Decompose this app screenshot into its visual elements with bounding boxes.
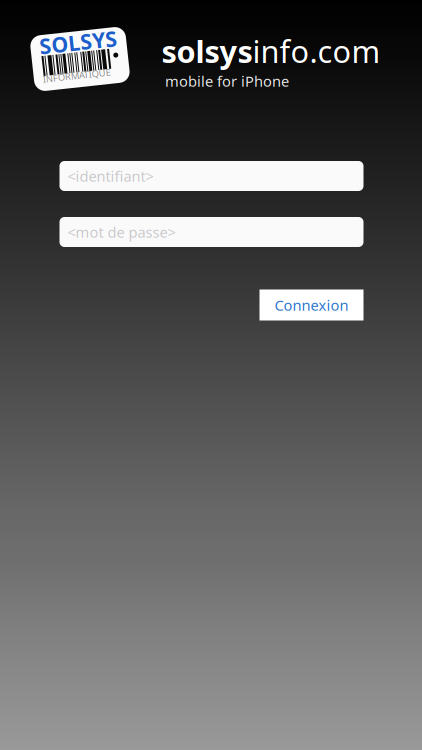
staticText: INFORMATIQUE bbox=[41, 69, 109, 81]
button[interactable]: Connexion bbox=[259, 289, 363, 320]
button[interactable]: <identifiant> bbox=[59, 161, 363, 191]
staticText: mobile for iPhone bbox=[165, 71, 289, 91]
staticText: solsysinfo.com bbox=[161, 31, 380, 71]
staticText: <identifiant> bbox=[67, 166, 153, 186]
button[interactable]: <mot de passe> bbox=[59, 217, 363, 247]
staticText: SOLSYS bbox=[41, 28, 119, 56]
staticText: Connexion bbox=[274, 295, 348, 315]
staticText: <mot de passe> bbox=[67, 222, 175, 242]
